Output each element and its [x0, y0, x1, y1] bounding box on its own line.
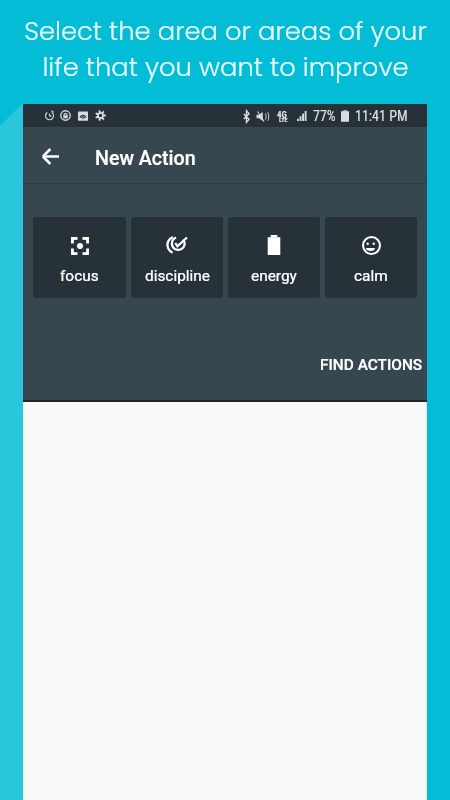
button[interactable]: discipline — [131, 217, 223, 298]
button[interactable]: calm — [325, 217, 417, 298]
staticText: focus — [60, 267, 99, 285]
button[interactable]: focus — [33, 217, 126, 298]
staticText: discipline — [145, 267, 210, 285]
staticText: LTE — [279, 116, 288, 123]
button[interactable]: FIND ACTIONS — [312, 346, 431, 384]
staticText: Select the area or areas of your — [24, 13, 427, 49]
staticText: New Action — [95, 147, 196, 170]
staticText: energy — [251, 267, 297, 285]
staticText: 4G — [277, 110, 287, 121]
staticText: 11:41 PM — [355, 108, 408, 124]
button[interactable]: energy — [228, 217, 320, 298]
button[interactable]: Back — [28, 134, 72, 178]
staticText: calm — [354, 267, 388, 285]
staticText: FIND ACTIONS — [320, 356, 423, 374]
staticText: life that you want to improve — [42, 49, 409, 85]
staticText: 77% — [313, 108, 336, 124]
